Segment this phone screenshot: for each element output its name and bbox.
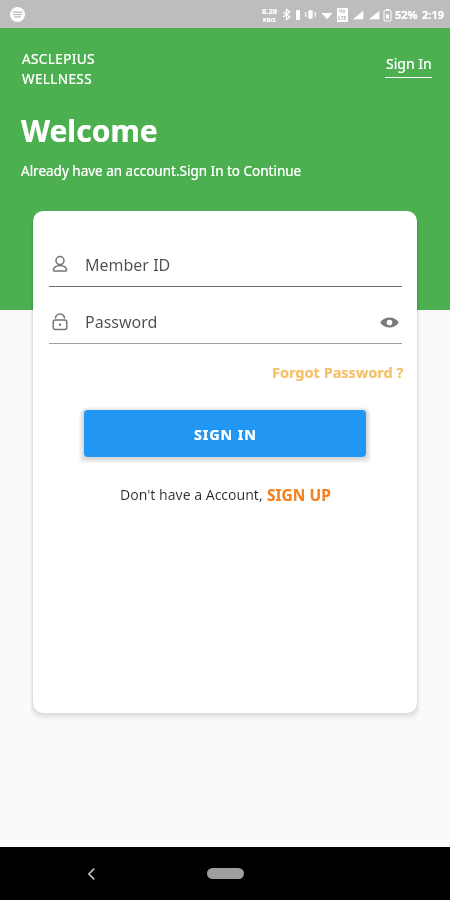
button[interactable]: SIGN UP [267,484,331,505]
staticText: SIGN UP [267,484,331,505]
staticText: 2:19 [422,7,444,22]
staticText: Welcome [21,110,158,151]
staticText: Already have an account.Sign In to Conti… [21,162,302,180]
button[interactable]: Member ID [33,244,417,287]
button[interactable]: Sign In [385,54,432,78]
staticText: 0.20 [262,6,277,16]
staticText: Password [85,311,158,333]
button[interactable]: Home [207,868,244,879]
staticText: Vo [339,8,346,15]
staticText: Don't have a Account, [120,485,267,504]
staticText: Sign In [386,54,432,73]
button[interactable]: SIGN IN [84,410,366,457]
staticText: LTE [338,15,347,22]
staticText: Forgot Password ? [272,362,404,382]
staticText: 52% [395,7,418,22]
staticText: SIGN IN [194,424,257,444]
staticText: WELLNESS [22,70,92,88]
button[interactable]: Show password [376,309,402,335]
button[interactable]: Forgot Password ? [272,362,404,382]
staticText: Member ID [85,254,171,276]
button[interactable]: Password [33,301,417,344]
button[interactable]: Back [74,856,110,892]
staticText: KB/S [263,16,276,23]
staticText: ASCLEPIUS [22,50,95,68]
